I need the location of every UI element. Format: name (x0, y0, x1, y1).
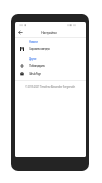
button[interactable]: Поблагодарить (15, 62, 86, 70)
button[interactable]: Github Page (15, 70, 86, 78)
staticText: Github Page (29, 72, 41, 76)
staticText: Сохранить совет дня (29, 47, 50, 51)
staticText: © 2019-2021 Timofeev Alexander Sergeevic… (25, 85, 76, 89)
staticText: Настройки (41, 30, 57, 35)
button[interactable]: Back (15, 28, 26, 37)
button[interactable]: Сохранить совет дня (15, 45, 86, 53)
staticText: Другое (29, 57, 37, 61)
staticText: Новости (29, 40, 38, 44)
staticText: Поблагодарить (29, 64, 45, 68)
